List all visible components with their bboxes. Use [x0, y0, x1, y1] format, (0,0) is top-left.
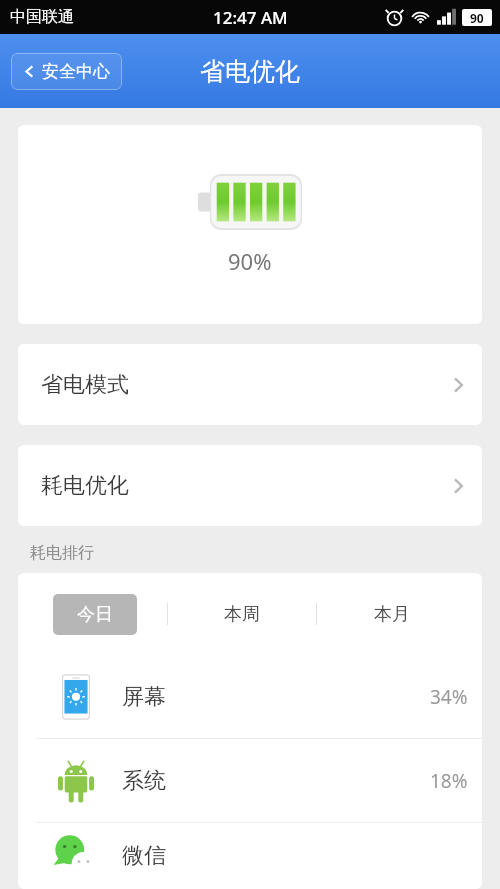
- staticText: 34%: [430, 684, 468, 710]
- button[interactable]: 省电模式: [18, 344, 482, 425]
- staticText: 本月: [374, 603, 410, 626]
- staticText: 中国联通: [10, 7, 74, 27]
- staticText: 12:47 AM: [213, 6, 288, 29]
- staticText: 90: [470, 10, 484, 26]
- other: System: [52, 757, 100, 805]
- staticText: 本周: [224, 603, 260, 626]
- button[interactable]: 本月: [317, 594, 466, 635]
- staticText: 18%: [430, 768, 468, 794]
- button[interactable]: Screen: [18, 655, 482, 738]
- button[interactable]: WeChat: [18, 823, 482, 889]
- button[interactable]: 安全中心: [11, 53, 122, 90]
- button[interactable]: System: [18, 739, 482, 822]
- staticText: 屏幕: [122, 683, 166, 711]
- staticText: 系统: [122, 767, 166, 795]
- button[interactable]: 耗电优化: [18, 445, 482, 526]
- button[interactable]: 本周: [168, 594, 316, 635]
- staticText: 省电优化: [200, 56, 300, 87]
- staticText: 今日: [77, 603, 113, 626]
- button[interactable]: 今日: [53, 594, 137, 635]
- staticText: 微信: [122, 842, 166, 870]
- staticText: 省电模式: [41, 371, 129, 399]
- staticText: 耗电排行: [30, 543, 94, 563]
- staticText: 90%: [228, 246, 272, 276]
- staticText: 耗电优化: [41, 472, 129, 500]
- other: WeChat: [52, 832, 100, 880]
- staticText: 安全中心: [42, 61, 110, 82]
- other: Screen: [52, 673, 100, 721]
